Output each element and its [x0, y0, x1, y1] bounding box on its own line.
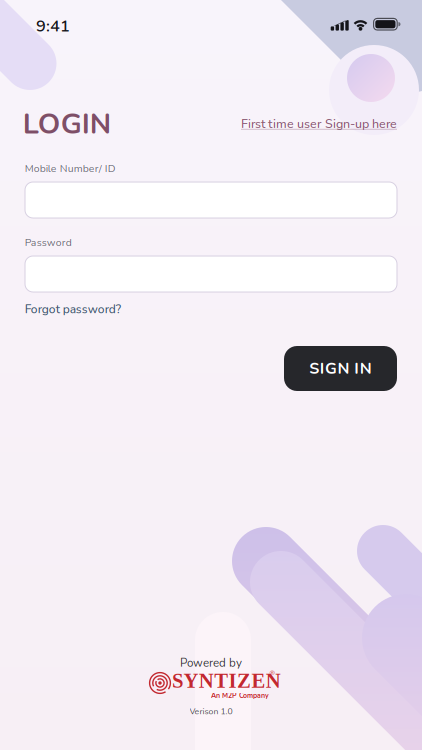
- staticText: Verison 1.0: [189, 705, 232, 717]
- staticText: SYNTIZEN: [172, 669, 281, 692]
- staticText: LOGIN: [23, 104, 111, 144]
- staticText: Powered by: [180, 655, 242, 671]
- button[interactable]: Forgot password?: [25, 301, 121, 317]
- staticText: SIGN IN: [309, 358, 372, 379]
- button[interactable]: SIGN IN: [284, 346, 397, 391]
- staticText: An M2P Company: [211, 691, 269, 700]
- staticText: Forgot password?: [25, 301, 121, 317]
- staticText: ®: [269, 668, 274, 678]
- button[interactable]: First time user Sign-up here: [241, 115, 397, 132]
- staticText: 9:41: [36, 15, 70, 37]
- staticText: First time user Sign-up here: [241, 115, 397, 132]
- staticText: Password: [25, 235, 72, 250]
- staticText: Mobile Number/ ID: [25, 161, 116, 176]
